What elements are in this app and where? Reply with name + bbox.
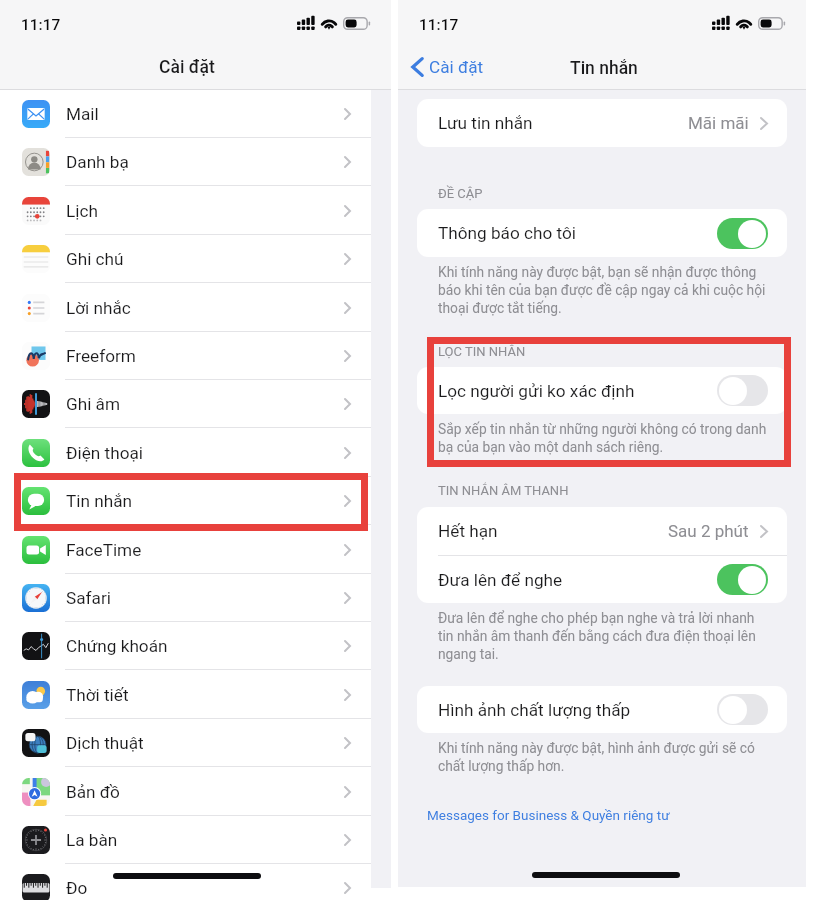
button[interactable]: Đưa lên để nghe xyxy=(417,556,787,603)
staticText: Lời nhắc xyxy=(66,298,131,318)
staticText: Đưa lên để nghe cho phép bạn nghe và trả… xyxy=(438,610,768,663)
staticText: Bản đồ xyxy=(66,782,120,802)
staticText: Danh bạ xyxy=(66,152,129,172)
button[interactable]: FaceTime xyxy=(0,526,371,574)
staticText: Safari xyxy=(66,588,111,608)
staticText: Điện thoại xyxy=(66,443,143,463)
button[interactable]: Ghi chú xyxy=(0,235,371,283)
button[interactable]: Lưu tin nhắn xyxy=(417,99,787,147)
staticText: Ghi âm xyxy=(66,394,121,414)
button[interactable]: Hết hạn xyxy=(417,507,787,555)
staticText: Tin nhắn xyxy=(66,491,132,511)
button[interactable]: La bàn xyxy=(0,816,371,864)
button[interactable]: Switch on xyxy=(717,218,768,249)
staticText: LỌC TIN NHẮN xyxy=(438,344,526,359)
button[interactable]: Hình ảnh chất lượng thấp xyxy=(417,686,787,733)
staticText: Sắp xếp tin nhắn từ những người không có… xyxy=(438,421,768,456)
button[interactable]: Dịch thuật xyxy=(0,719,371,767)
staticText: Thời tiết xyxy=(66,685,129,705)
staticText: Mãi mãi xyxy=(688,113,749,133)
button[interactable]: Tin nhắn xyxy=(0,477,371,525)
staticText: Sau 2 phút xyxy=(668,521,749,541)
staticText: Khi tính năng này được bật, hình ảnh đượ… xyxy=(438,740,768,775)
staticText: Hết hạn xyxy=(438,521,668,541)
staticText: 11:17 xyxy=(21,16,61,34)
staticText: Đưa lên để nghe xyxy=(438,570,717,590)
staticText: 11:17 xyxy=(419,16,459,34)
staticText: Khi tính năng này được bật, bạn sẽ nhận … xyxy=(438,264,768,317)
staticText: Chứng khoán xyxy=(66,636,168,656)
staticText: Hình ảnh chất lượng thấp xyxy=(438,700,717,720)
button[interactable]: Switch on xyxy=(717,564,768,595)
button[interactable]: Danh bạ xyxy=(0,138,371,186)
staticText: TIN NHẮN ÂM THANH xyxy=(438,483,569,498)
button[interactable]: Switch off xyxy=(717,375,768,406)
staticText: Lịch xyxy=(66,201,98,221)
staticText: Thông báo cho tôi xyxy=(438,223,717,243)
button[interactable]: Bản đồ xyxy=(0,768,371,816)
staticText: Mail xyxy=(66,104,99,124)
staticText: Đo xyxy=(66,878,88,898)
staticText: Lọc người gửi ko xác định xyxy=(438,381,717,401)
button[interactable]: Điện thoại xyxy=(0,429,371,477)
button[interactable]: Mail xyxy=(0,90,371,138)
button[interactable]: Ghi âm xyxy=(0,380,371,428)
button[interactable]: Lịch xyxy=(0,187,371,235)
button[interactable]: Thời tiết xyxy=(0,671,371,719)
button[interactable]: Đo xyxy=(0,864,371,900)
button[interactable]: Messages for Business & Quyền riêng tư xyxy=(427,807,670,823)
button[interactable]: Freeform xyxy=(0,332,371,380)
button[interactable]: Lọc người gửi ko xác định xyxy=(417,367,787,414)
staticText: Cài đặt xyxy=(159,57,215,78)
button[interactable]: Safari xyxy=(0,574,371,622)
staticText: Tin nhắn xyxy=(570,58,638,79)
staticText: La bàn xyxy=(66,830,118,850)
button[interactable]: Thông báo cho tôi xyxy=(417,209,787,257)
button[interactable]: Switch off xyxy=(717,694,768,725)
staticText: Dịch thuật xyxy=(66,733,144,753)
button[interactable]: Lời nhắc xyxy=(0,284,371,332)
staticText: FaceTime xyxy=(66,540,142,560)
staticText: Lưu tin nhắn xyxy=(438,113,688,133)
button[interactable]: Chứng khoán xyxy=(0,622,371,670)
staticText: ĐỀ CẬP xyxy=(438,186,483,201)
staticText: Ghi chú xyxy=(66,249,124,269)
button[interactable]: Cài đặt xyxy=(411,56,484,78)
staticText: Cài đặt xyxy=(429,57,484,77)
staticText: Freeform xyxy=(66,346,136,366)
